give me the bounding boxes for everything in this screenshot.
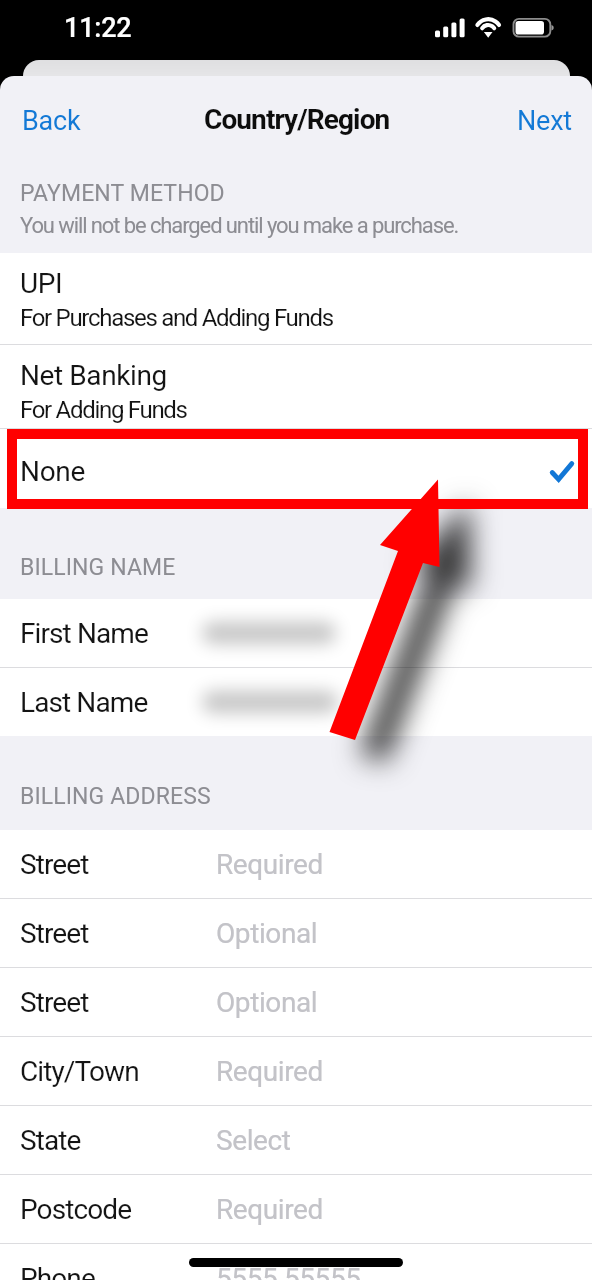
- staticText: Last Name: [20, 686, 148, 719]
- staticText: Street: [20, 917, 89, 950]
- staticText: Required: [216, 848, 323, 881]
- staticText: City/Town: [20, 1055, 139, 1088]
- button[interactable]: UPI: [0, 253, 592, 344]
- button[interactable]: City/Town: [0, 1037, 592, 1105]
- staticText: UPI: [20, 267, 63, 300]
- button[interactable]: State: [0, 1106, 592, 1174]
- staticText: Postcode: [20, 1193, 132, 1226]
- staticText: Country/Region: [204, 103, 390, 136]
- staticText: Required: [216, 1193, 323, 1226]
- staticText: First Name: [20, 617, 148, 650]
- staticText: 11:22: [64, 12, 132, 44]
- button[interactable]: First Name: [0, 599, 592, 667]
- staticText: Optional: [216, 917, 318, 950]
- staticText: 5555 55555: [216, 1262, 361, 1280]
- staticText: BILLING ADDRESS: [20, 783, 211, 810]
- button[interactable]: Postcode: [0, 1175, 592, 1243]
- other: Signal, Wi-Fi and battery status: [433, 16, 559, 40]
- staticText: Select: [216, 1124, 291, 1157]
- staticText: Street: [20, 848, 89, 881]
- staticText: Phone: [20, 1262, 95, 1280]
- staticText: None: [20, 455, 86, 488]
- staticText: Next: [517, 105, 573, 137]
- staticText: Street: [20, 986, 89, 1019]
- button[interactable]: Last Name: [0, 668, 592, 736]
- staticText: Optional: [216, 986, 318, 1019]
- button[interactable]: Street: [0, 830, 592, 898]
- staticText: For Adding Funds: [20, 396, 187, 424]
- staticText: State: [20, 1124, 81, 1157]
- button[interactable]: Phone: [0, 1244, 592, 1280]
- staticText: For Purchases and Adding Funds: [20, 304, 333, 332]
- staticText: Back: [22, 105, 81, 137]
- staticText: PAYMENT METHOD: [20, 180, 225, 207]
- other: Selected: [550, 461, 574, 482]
- button[interactable]: Net Banking: [0, 345, 592, 428]
- staticText: Required: [216, 1055, 323, 1088]
- staticText: Net Banking: [20, 359, 167, 392]
- button[interactable]: Street: [0, 899, 592, 967]
- button[interactable]: Street: [0, 968, 592, 1036]
- staticText: You will not be charged until you make a…: [20, 213, 459, 239]
- button[interactable]: Next: [493, 87, 592, 149]
- staticText: BILLING NAME: [20, 554, 176, 581]
- button[interactable]: None: [0, 429, 592, 508]
- button[interactable]: Back: [0, 87, 105, 149]
